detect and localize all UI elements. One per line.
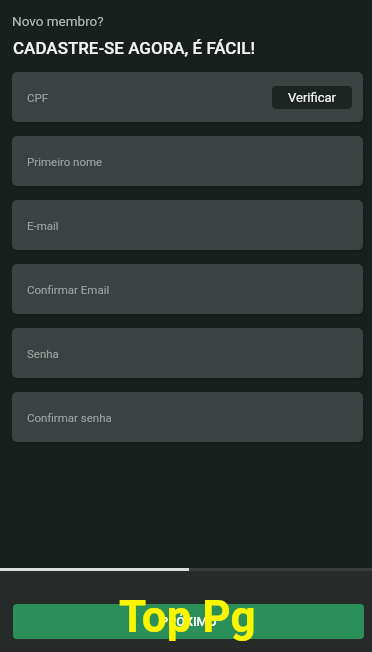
- staticText: CADASTRE-SE AGORA, É FÁCIL!: [13, 38, 255, 58]
- staticText: Novo membro?: [12, 13, 104, 29]
- button[interactable]: Confirmar senha: [12, 392, 363, 442]
- button[interactable]: Primeiro nome: [12, 136, 363, 186]
- staticText: E-mail: [27, 219, 59, 232]
- other: Progresso do cadastro: [0, 568, 372, 571]
- button[interactable]: E-mail: [12, 200, 363, 250]
- staticText: Confirmar senha: [27, 411, 112, 424]
- button[interactable]: Senha: [12, 328, 363, 378]
- button[interactable]: CPF: [12, 72, 363, 122]
- button[interactable]: Confirmar Email: [12, 264, 363, 314]
- staticText: CPF: [27, 91, 49, 104]
- staticText: Confirmar Email: [27, 283, 110, 296]
- button[interactable]: Verificar: [272, 86, 352, 109]
- staticText: PRÓXIMO: [160, 614, 217, 629]
- staticText: Verificar: [288, 90, 336, 105]
- button[interactable]: PRÓXIMO: [13, 604, 364, 639]
- staticText: Senha: [27, 347, 59, 360]
- staticText: Primeiro nome: [27, 155, 103, 168]
- staticText: Top Pg: [119, 591, 256, 643]
